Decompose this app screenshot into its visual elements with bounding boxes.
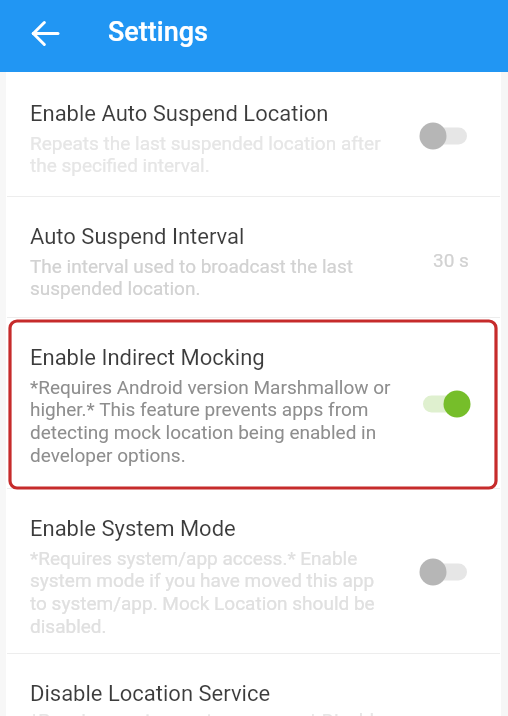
staticText: Disable Location Service [30, 681, 271, 707]
button[interactable]: Back [22, 10, 68, 56]
button[interactable]: Switch off [409, 549, 481, 595]
staticText: *Requires Android version Marshmallow or… [30, 376, 391, 467]
staticText: The interval used to broadcast the last … [30, 255, 353, 300]
staticText: Settings [108, 16, 208, 48]
staticText: Repeats the last suspended location afte… [30, 132, 381, 177]
button[interactable]: Enable System Mode [0, 489, 508, 654]
button[interactable]: Auto Suspend Interval [0, 197, 508, 318]
button[interactable]: Disable Location Service [0, 654, 508, 716]
staticText: Auto Suspend Interval [30, 224, 245, 250]
staticText: Enable Indirect Mocking [30, 345, 265, 371]
staticText: *Requires system/app access.* Enable sys… [30, 547, 375, 638]
staticText: Enable Auto Suspend Location [30, 101, 329, 127]
staticText: 30 s [433, 249, 469, 271]
staticText: *Requires root or system access.* Disabl… [30, 709, 385, 716]
button[interactable]: Switch on [409, 381, 481, 427]
button[interactable]: Enable Auto Suspend Location [0, 74, 508, 197]
button[interactable]: Switch off [409, 113, 481, 159]
staticText: Enable System Mode [30, 516, 236, 542]
button[interactable]: Enable Indirect Mocking [0, 318, 508, 489]
